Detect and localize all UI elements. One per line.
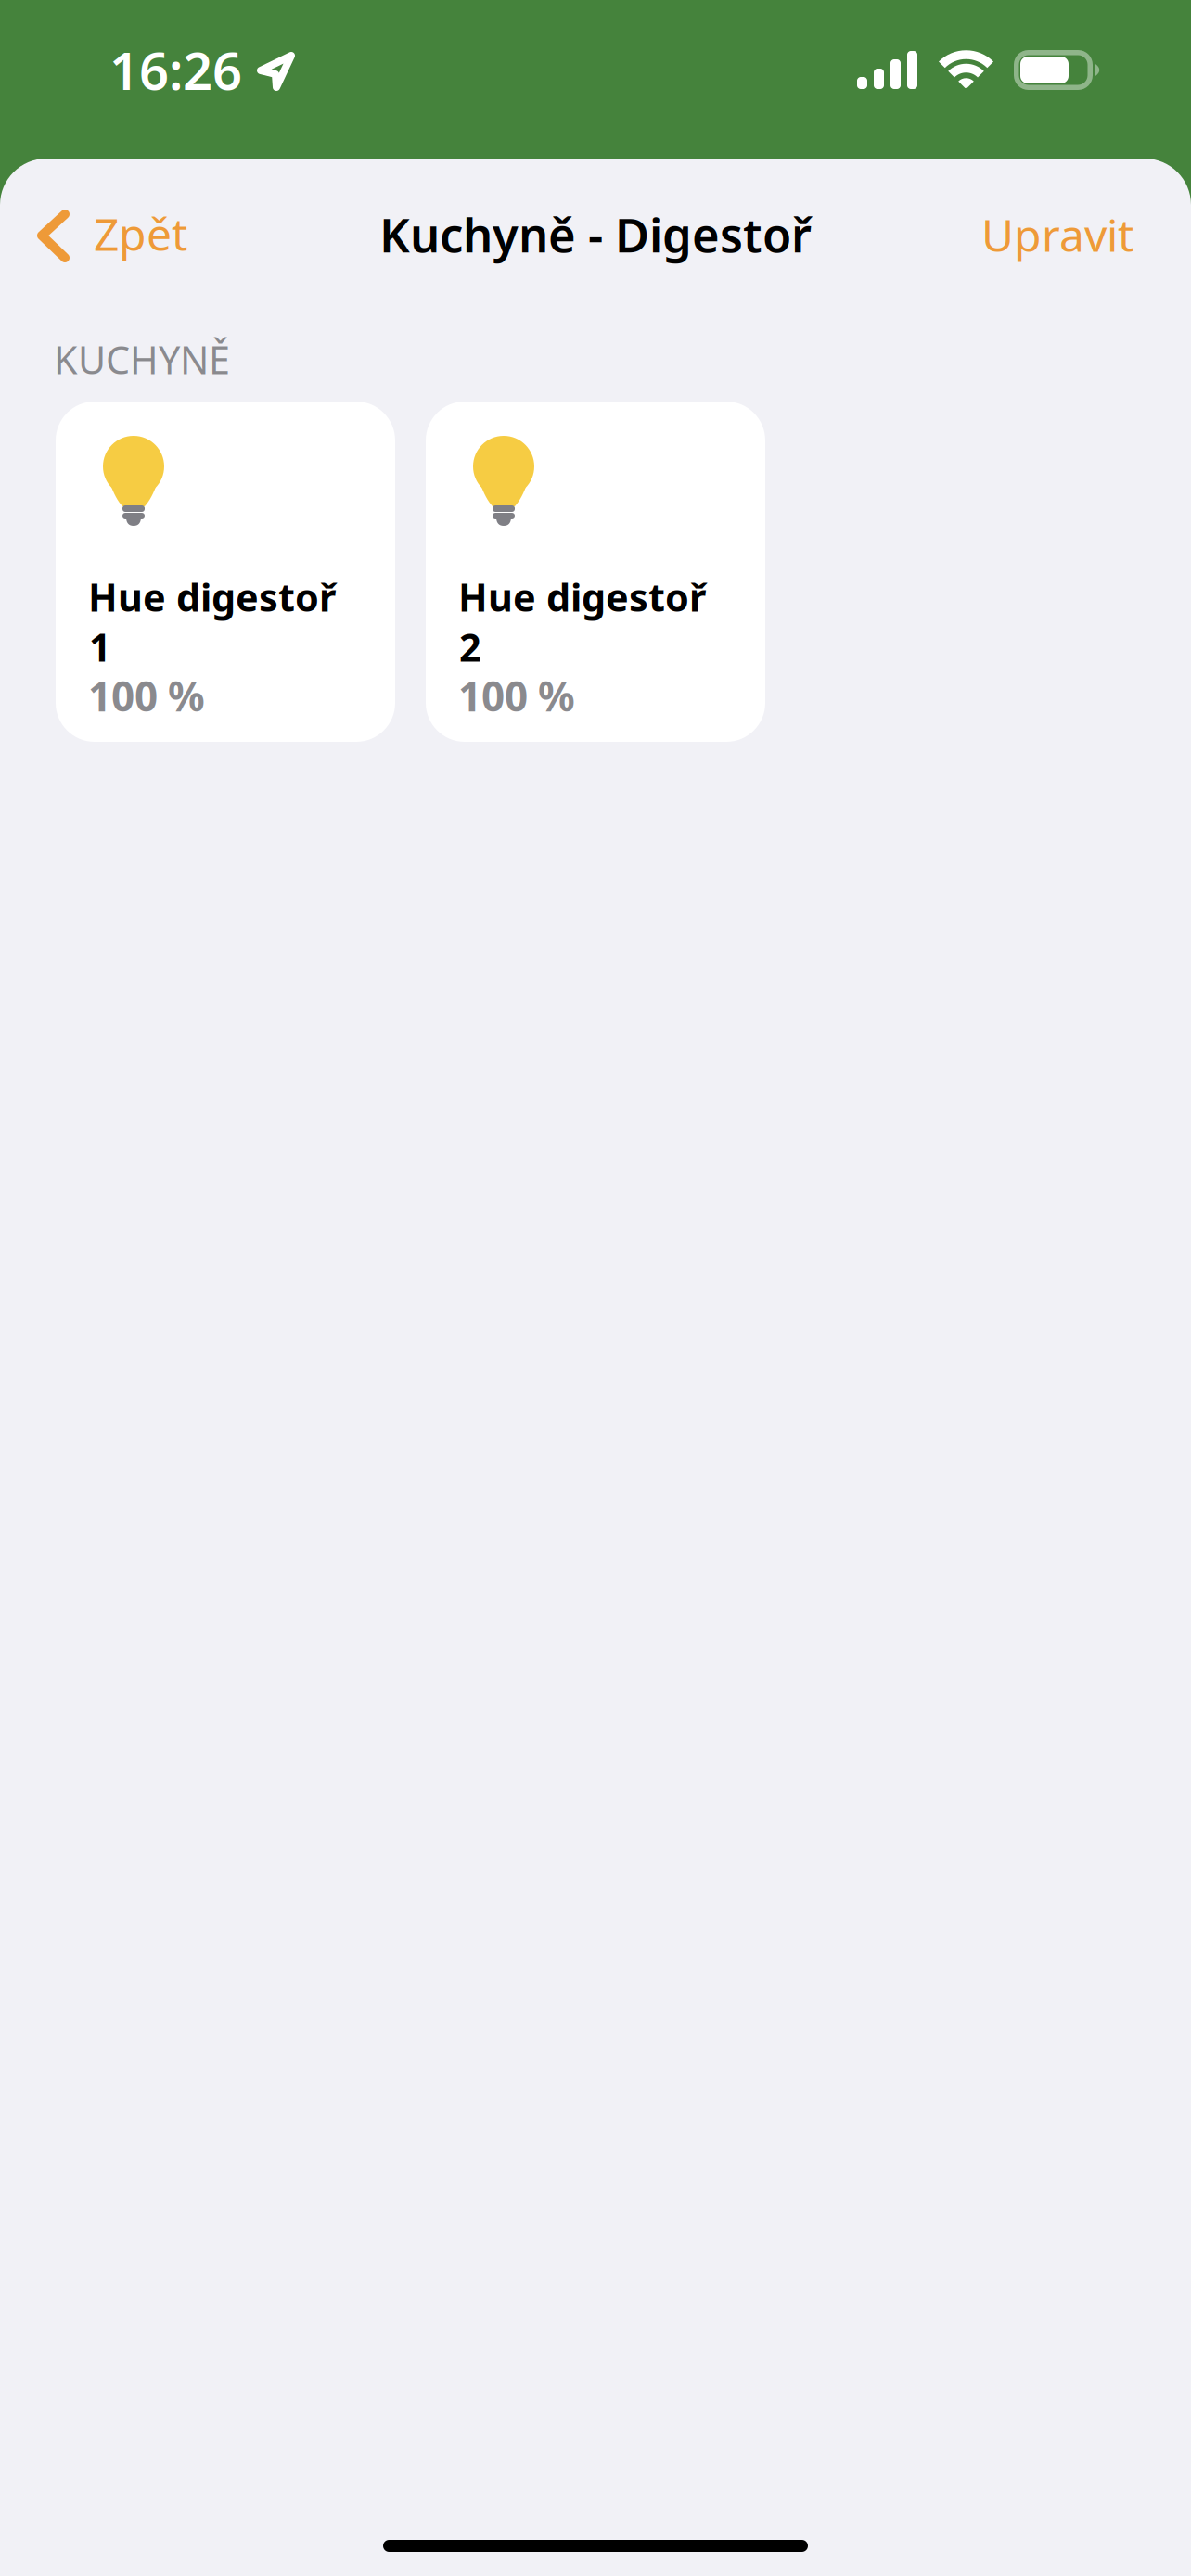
staticText: KUCHYNĚ bbox=[54, 334, 230, 385]
staticText: Kuchyně - Digestoř bbox=[379, 203, 812, 265]
staticText: Zpět bbox=[94, 204, 187, 263]
button[interactable]: Hue digestoř 1, 100 % bbox=[56, 402, 395, 742]
staticText: 100 % bbox=[458, 669, 575, 723]
staticText: 1 bbox=[89, 621, 111, 672]
staticText: Upravit bbox=[981, 205, 1133, 264]
staticText: 2 bbox=[459, 621, 481, 672]
button[interactable]: Hue digestoř 2, 100 % bbox=[426, 402, 765, 742]
staticText: 100 % bbox=[88, 669, 205, 723]
staticText: Hue digestoř bbox=[88, 571, 336, 622]
staticText: 16:26 bbox=[109, 35, 242, 104]
staticText: Hue digestoř bbox=[458, 571, 706, 622]
button[interactable]: Upravit bbox=[946, 185, 1154, 287]
button[interactable]: Zpět bbox=[19, 190, 241, 283]
